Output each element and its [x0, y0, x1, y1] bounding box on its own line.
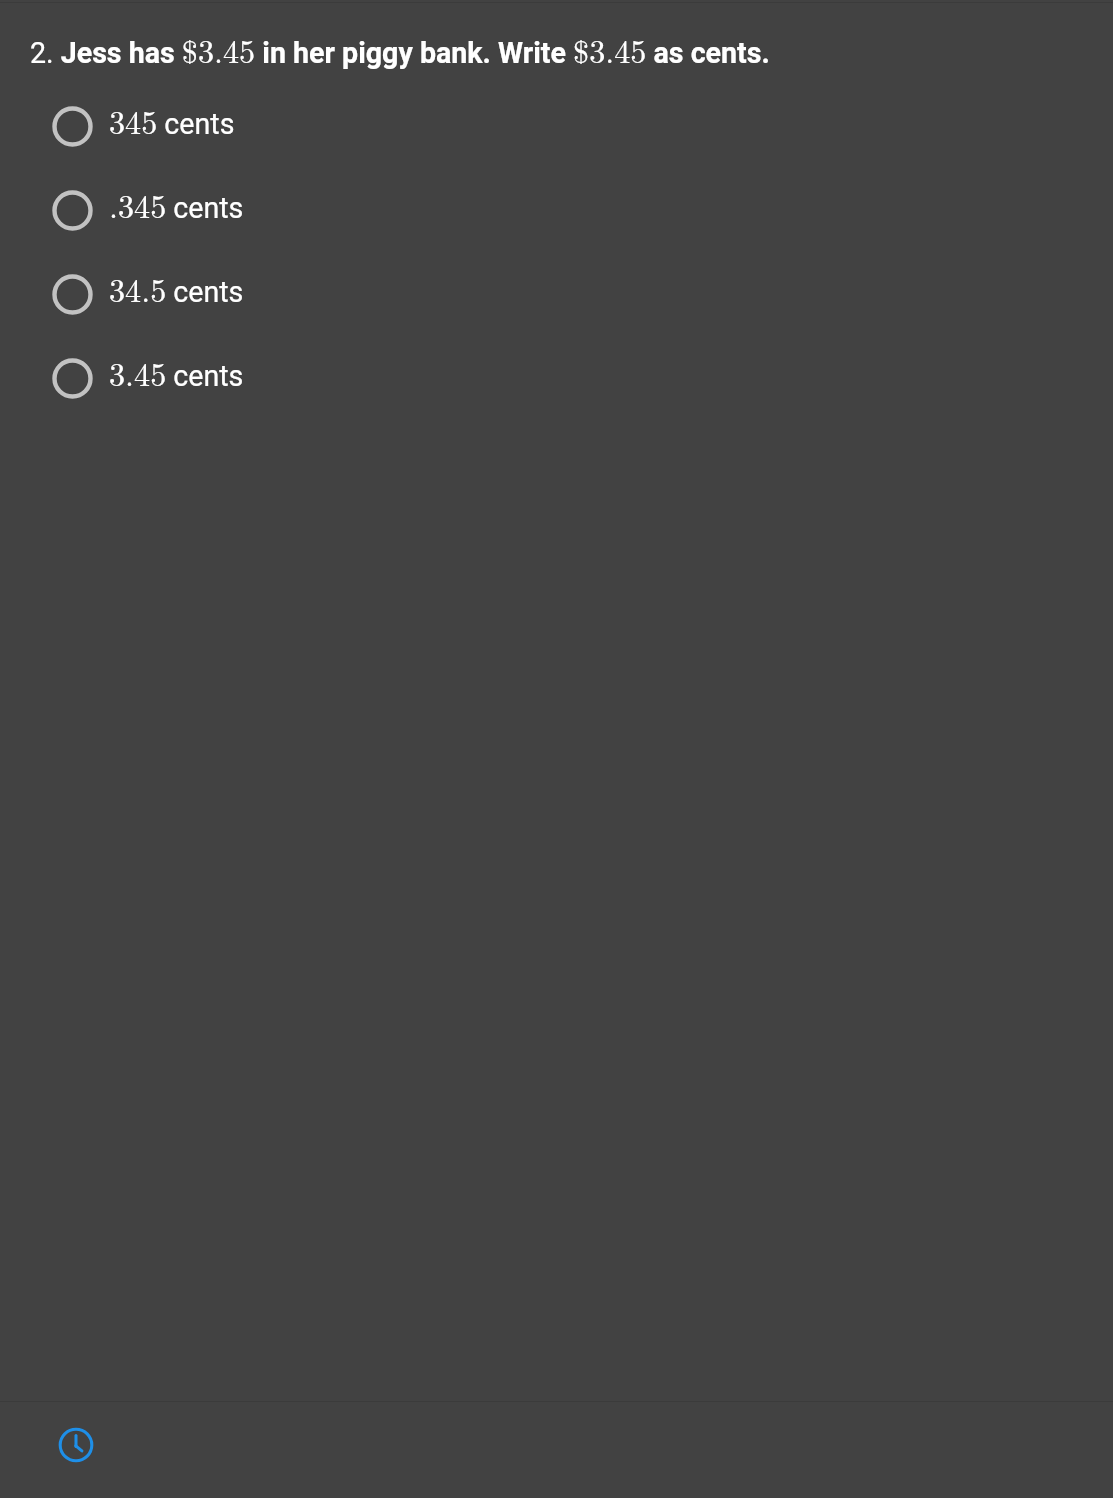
button[interactable]: 3.45 cents [0, 336, 1113, 420]
staticText: 34.5 cents [109, 266, 244, 312]
button[interactable]: .345 cents [0, 168, 1113, 252]
staticText: 3.45 cents [109, 350, 244, 396]
staticText: .345 cents [109, 182, 244, 228]
button[interactable]: 345 cents [0, 84, 1113, 168]
staticText: 2. Jess has $3.45 in her piggy bank. Wri… [30, 27, 770, 73]
button[interactable]: 34.5 cents [0, 252, 1113, 336]
staticText: 345 cents [109, 98, 235, 144]
button[interactable]: Timer [54, 1423, 98, 1467]
